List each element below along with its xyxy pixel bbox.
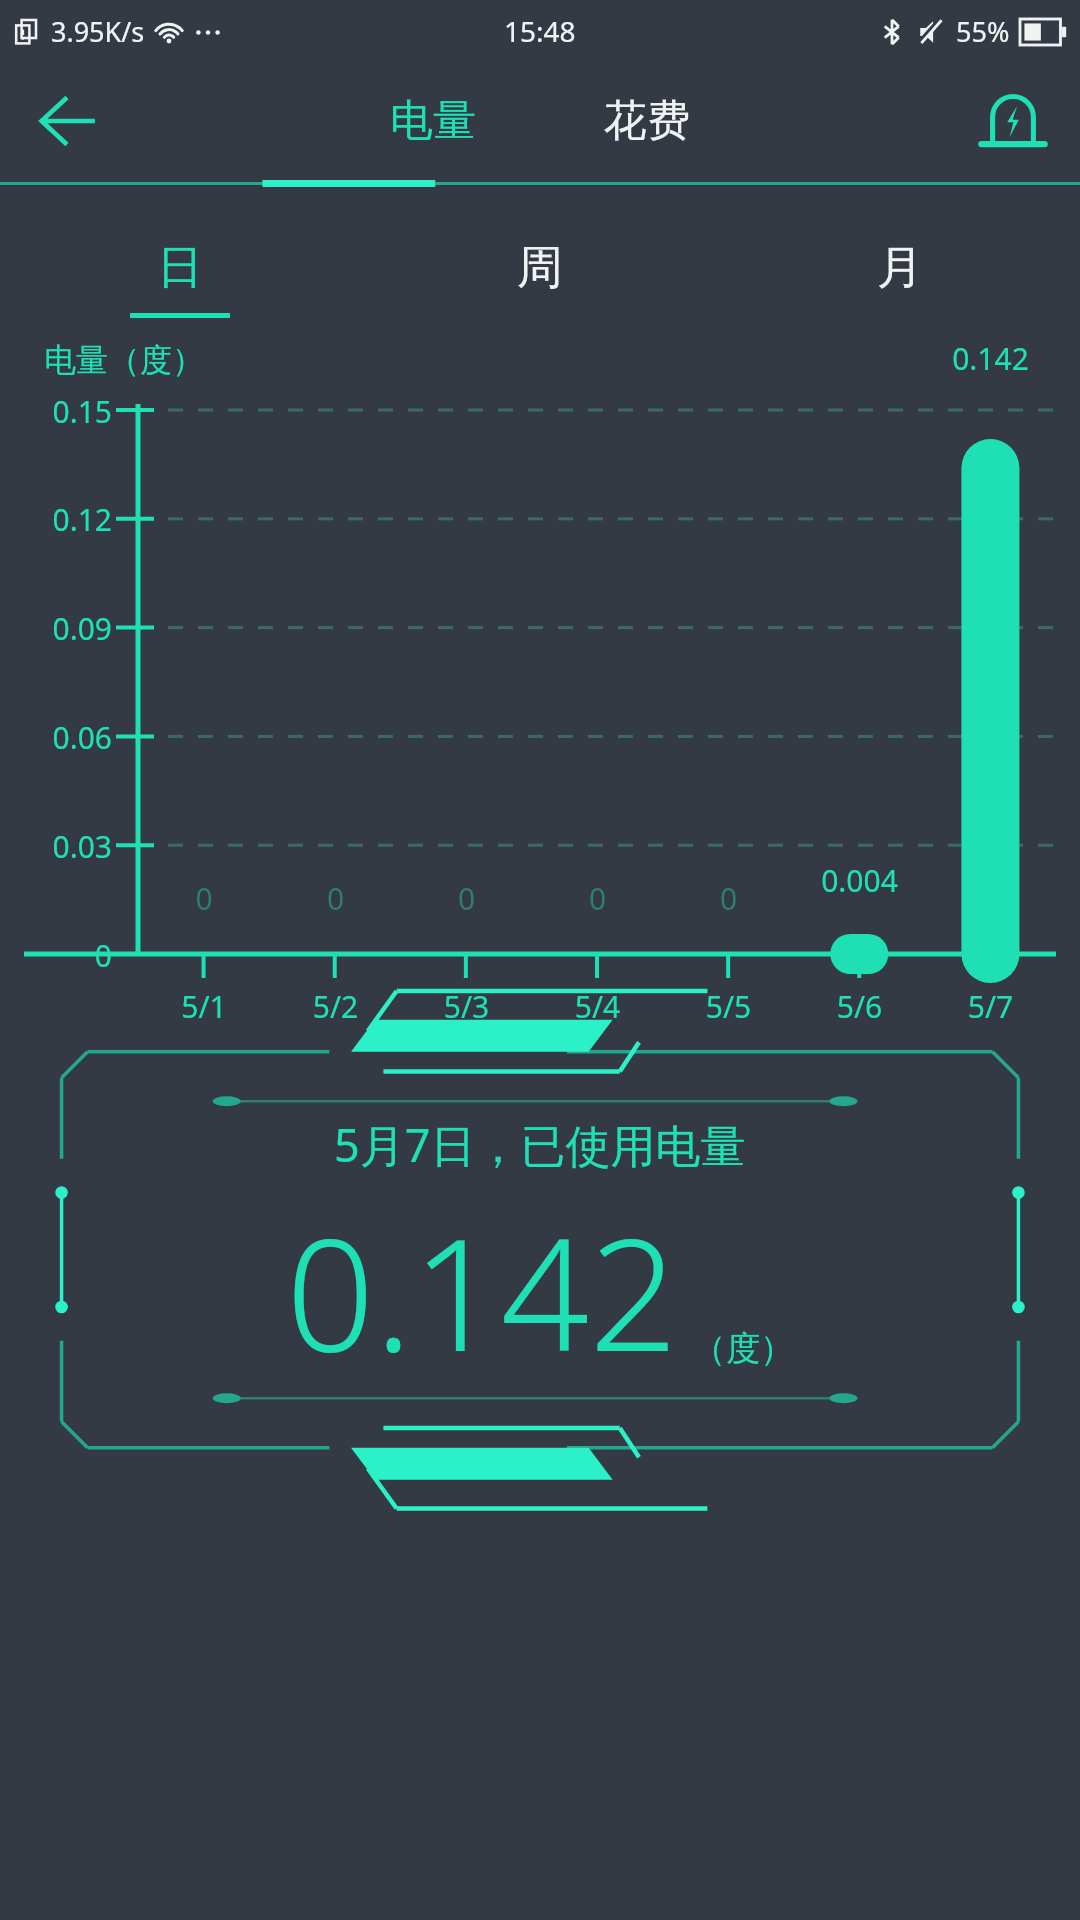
staticText: 5/4 — [532, 986, 663, 1027]
button[interactable]: Charging — [970, 78, 1056, 164]
button[interactable]: 花费 — [540, 62, 754, 180]
staticText: 0.142 — [925, 338, 1056, 379]
staticText: 0 — [663, 878, 794, 919]
staticText: 电量（度） — [44, 340, 204, 380]
staticText: 0 — [0, 935, 112, 976]
staticText: 0.142 — [286, 1185, 678, 1396]
button[interactable]: Back — [24, 78, 110, 164]
staticText: 0.03 — [0, 826, 112, 867]
staticText: 5/1 — [138, 986, 270, 1027]
staticText: 0 — [138, 878, 270, 919]
staticText: 0 — [270, 878, 401, 919]
staticText: 55% — [956, 13, 1010, 50]
button[interactable]: 日 — [0, 218, 360, 338]
staticText: 0.06 — [0, 717, 112, 758]
staticText: 5月7日，已使用电量 — [334, 1114, 746, 1175]
button[interactable]: 电量 — [326, 62, 540, 180]
staticText: 月 — [877, 239, 923, 297]
staticText: 电量 — [390, 94, 476, 148]
staticText: 0.12 — [0, 499, 112, 540]
staticText: 5/5 — [663, 986, 794, 1027]
button[interactable]: 5月7日，已使用电量 — [0, 1018, 1080, 1468]
staticText: 5/6 — [794, 986, 925, 1027]
button[interactable]: 月 — [720, 218, 1080, 338]
staticText: 0 — [532, 878, 663, 919]
staticText: 0 — [401, 878, 532, 919]
staticText: 花费 — [604, 94, 690, 148]
staticText: 0.004 — [794, 860, 925, 901]
staticText: 0.09 — [0, 608, 112, 649]
staticText: 15:48 — [504, 12, 576, 50]
staticText: 5/7 — [925, 986, 1056, 1027]
staticText: 周 — [517, 239, 563, 297]
staticText: 5/3 — [401, 986, 532, 1027]
staticText: （度） — [692, 1327, 794, 1370]
button[interactable]: 周 — [360, 218, 720, 338]
staticText: 0.15 — [0, 391, 112, 432]
staticText: 3.95K/s — [51, 13, 145, 50]
staticText: 日 — [157, 239, 203, 297]
staticText: 5/2 — [270, 986, 401, 1027]
